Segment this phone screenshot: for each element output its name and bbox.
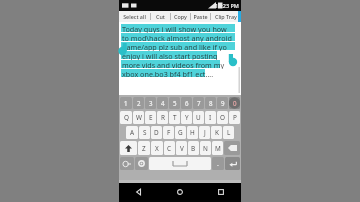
button[interactable]: Enter — [225, 157, 240, 170]
staticText: S — [143, 128, 147, 137]
staticText: game/app plz sub and like if yo — [122, 42, 227, 51]
staticText: O — [220, 113, 225, 122]
staticText: G — [178, 128, 183, 137]
staticText: 6 — [185, 99, 189, 107]
staticText: Copy — [174, 13, 187, 20]
staticText: 1 — [124, 99, 128, 107]
button[interactable]: Back — [119, 183, 159, 200]
button[interactable]: N — [200, 141, 211, 155]
button[interactable]: Emoji — [120, 157, 134, 170]
button[interactable]: Clip Tray — [211, 11, 241, 22]
staticText: Y — [185, 113, 189, 122]
staticText: 4 — [161, 99, 165, 107]
button[interactable]: J — [199, 126, 210, 139]
staticText: C — [167, 144, 172, 153]
button[interactable]: F — [163, 126, 174, 139]
button[interactable]: I — [205, 111, 216, 124]
staticText: enjoy i will also start posting — [122, 51, 218, 60]
button[interactable]: T — [169, 111, 180, 124]
staticText: Paste — [193, 13, 208, 20]
button[interactable]: Space — [149, 157, 211, 170]
staticText: W — [136, 113, 142, 122]
button[interactable]: 7 — [193, 97, 204, 109]
staticText: more vids and videos from my — [122, 60, 225, 69]
button[interactable]: B — [188, 141, 199, 155]
button[interactable]: Copy — [171, 11, 190, 22]
button[interactable]: H — [187, 126, 198, 139]
button[interactable]: 4 — [157, 97, 168, 109]
staticText: to mod\hack almost any android — [122, 33, 232, 42]
button[interactable]: . — [212, 157, 224, 170]
button[interactable]: E — [145, 111, 156, 124]
button[interactable]: M — [212, 141, 223, 155]
staticText: Clip Tray — [215, 13, 237, 20]
button[interactable]: V — [176, 141, 187, 155]
staticText: 7 — [197, 99, 201, 107]
button[interactable]: Settings — [135, 157, 148, 170]
staticText: Select all — [123, 13, 146, 20]
button[interactable]: Cut — [151, 11, 170, 22]
staticText: N — [203, 144, 208, 153]
staticText: 0 — [233, 99, 237, 107]
button[interactable]: 8 — [205, 97, 216, 109]
staticText: X — [155, 144, 159, 153]
button[interactable]: Z — [138, 141, 150, 155]
staticText: H — [190, 128, 195, 137]
button[interactable]: A — [126, 126, 138, 139]
button[interactable]: Backspace — [224, 141, 240, 155]
staticText: 3 — [149, 99, 153, 107]
staticText: U — [196, 113, 201, 122]
staticText: Today guys i will show you how — [122, 24, 227, 33]
button[interactable]: 1 — [120, 97, 132, 109]
staticText: A — [130, 128, 135, 137]
staticText: T — [173, 113, 177, 122]
staticText: Cut — [156, 13, 165, 20]
button[interactable]: K — [211, 126, 222, 139]
button[interactable]: P — [229, 111, 240, 124]
staticText: L — [227, 128, 231, 137]
button[interactable]: Recents — [200, 183, 241, 200]
staticText: Q — [124, 113, 129, 122]
button[interactable]: Paste — [191, 11, 210, 22]
staticText: 11:23 PM — [215, 2, 239, 9]
button[interactable]: Q — [120, 111, 132, 124]
staticText: V — [180, 144, 184, 153]
staticText: K — [215, 128, 219, 137]
button[interactable]: Home — [159, 183, 200, 200]
staticText: . — [217, 159, 219, 169]
button[interactable]: 0 — [229, 97, 240, 109]
button[interactable]: 9 — [217, 97, 228, 109]
button[interactable]: R — [157, 111, 168, 124]
staticText: E — [149, 113, 153, 122]
staticText: 9 — [221, 99, 225, 107]
button[interactable]: Shift — [120, 141, 137, 155]
button[interactable]: S — [139, 126, 150, 139]
button[interactable]: O — [217, 111, 228, 124]
staticText: 2 — [137, 99, 141, 107]
staticText: P — [233, 113, 237, 122]
staticText: xbox one.bo3 bf4 bf1 ect.... — [122, 69, 214, 78]
button[interactable]: 6 — [181, 97, 192, 109]
staticText: M — [215, 144, 221, 153]
button[interactable]: X — [151, 141, 163, 155]
button[interactable]: 2 — [133, 97, 144, 109]
button[interactable]: Select all — [119, 11, 150, 22]
staticText: D — [154, 128, 159, 137]
staticText: R — [161, 113, 165, 122]
button[interactable]: D — [151, 126, 162, 139]
button[interactable]: C — [164, 141, 175, 155]
button[interactable]: Y — [181, 111, 192, 124]
staticText: Z — [142, 144, 146, 153]
staticText: 5 — [173, 99, 177, 107]
staticText: F — [167, 128, 171, 137]
staticText: B — [191, 144, 196, 153]
button[interactable]: U — [193, 111, 204, 124]
button[interactable]: L — [223, 126, 234, 139]
staticText: I — [209, 113, 212, 122]
button[interactable]: W — [133, 111, 144, 124]
staticText: 8 — [209, 99, 213, 107]
staticText: J — [204, 128, 206, 137]
button[interactable]: 3 — [145, 97, 156, 109]
button[interactable]: G — [175, 126, 186, 139]
button[interactable]: 5 — [169, 97, 180, 109]
